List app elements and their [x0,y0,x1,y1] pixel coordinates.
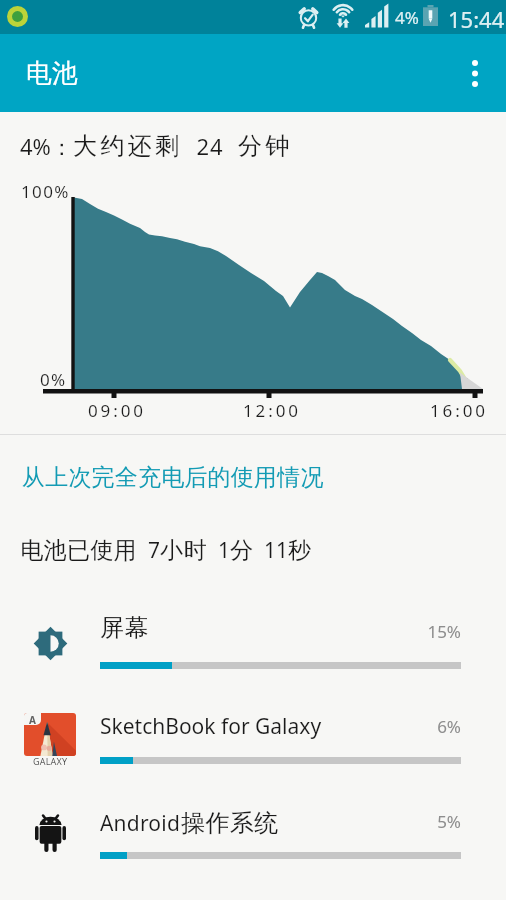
staticText: 操作系统 [181,808,279,838]
staticText: 24 [183,131,238,161]
button[interactable]: 屏幕 [0,596,506,691]
staticText: 1 [207,536,230,565]
staticText: 09:00 [88,399,146,422]
staticText: 大约还剩 [73,131,183,161]
button[interactable]: A [0,691,506,786]
staticText: 屏幕 [100,613,149,643]
staticText: 12:00 [243,399,301,422]
staticText: 16:00 [430,399,488,422]
button[interactable]: More options [444,34,506,112]
staticText: 分钟 [238,131,293,161]
staticText: 小时 [160,536,207,565]
staticText: 4%： [20,131,73,161]
staticText: 15:44 [448,4,505,34]
staticText: 分 [230,536,253,565]
button[interactable]: 从上次完全充电后的使用情况 [20,461,326,494]
staticText: A [29,713,36,725]
button[interactable]: Android [0,786,506,881]
staticText: 秒 [288,536,311,565]
staticText: 电池 [26,57,78,90]
staticText: 6% [400,715,461,738]
staticText: 11 [253,536,288,565]
staticText: GALAXY [33,755,68,767]
staticText: 电池已使用 [20,536,137,565]
staticText: 100% [21,180,70,203]
staticText: 5% [400,810,461,833]
staticText: 7 [137,536,160,565]
staticText: 0% [40,368,67,391]
staticText: 15% [400,620,461,643]
staticText: SketchBook for Galaxy [100,712,322,741]
staticText: Android [100,809,181,838]
staticText: 4% [395,6,419,29]
